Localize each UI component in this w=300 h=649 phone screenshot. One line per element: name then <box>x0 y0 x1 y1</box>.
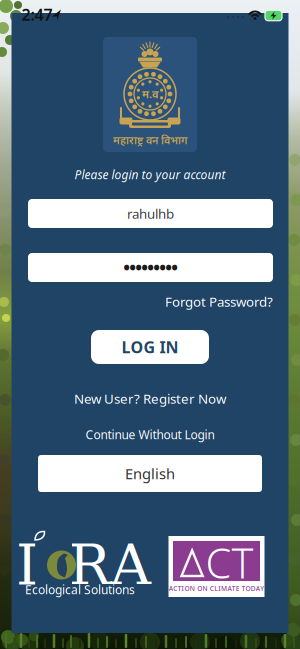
staticText: 2:47 <box>21 4 52 25</box>
staticText: I <box>16 532 38 598</box>
staticText: Forgot Password? <box>165 293 273 310</box>
staticText: म.व <box>142 87 158 101</box>
staticText: Please login to your account <box>74 166 225 182</box>
button[interactable]: rahulhb <box>28 199 273 228</box>
staticText: Ecological Solutions <box>25 581 135 597</box>
staticText: New User? Register Now <box>74 390 226 407</box>
button[interactable]: LOG IN <box>91 330 209 364</box>
button[interactable]: ••••••••• <box>28 253 273 282</box>
staticText: ACTION ON CLIMATE TODAY <box>121 580 300 597</box>
staticText: LOG IN <box>121 336 178 358</box>
button[interactable]: Forgot Password? <box>27 293 273 310</box>
staticText: RA <box>68 532 150 598</box>
staticText: Continue Without Login <box>85 426 214 442</box>
staticText: English <box>125 464 175 483</box>
staticText: rahulhb <box>127 205 174 222</box>
staticText: CT <box>205 535 253 590</box>
staticText: महाराष्ट्र वन विभाग <box>113 133 187 147</box>
staticText: ••••••••• <box>123 257 177 278</box>
button[interactable]: New User? Register Now <box>74 390 226 407</box>
button[interactable]: English <box>38 455 262 492</box>
button[interactable]: Continue Without Login <box>85 426 214 442</box>
